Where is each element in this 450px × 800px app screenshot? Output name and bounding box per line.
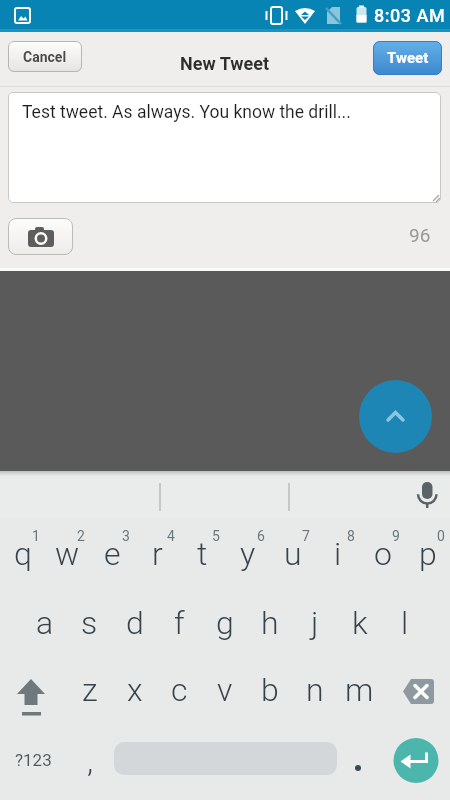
staticText: r bbox=[152, 535, 163, 573]
staticText: v bbox=[217, 671, 233, 709]
staticText: 96 bbox=[409, 224, 431, 246]
staticText: 2 bbox=[77, 528, 85, 544]
staticText: 6 bbox=[257, 528, 265, 544]
staticText: h bbox=[261, 604, 279, 642]
staticText: a bbox=[36, 604, 54, 642]
staticText: 3 bbox=[122, 528, 130, 544]
staticText: 8:03 AM bbox=[374, 5, 446, 26]
staticText: k bbox=[352, 604, 368, 642]
staticText: m bbox=[345, 671, 374, 709]
staticText: y bbox=[240, 535, 256, 573]
staticText: Test tweet. As always. You know the dril… bbox=[22, 102, 351, 123]
staticText: u bbox=[284, 535, 302, 573]
staticText: d bbox=[126, 604, 144, 642]
staticText: p bbox=[419, 535, 437, 573]
staticText: Tweet bbox=[387, 49, 429, 67]
staticText: 7 bbox=[302, 528, 310, 544]
staticText: , bbox=[87, 742, 94, 778]
staticText: New Tweet bbox=[180, 53, 270, 74]
staticText: 8 bbox=[347, 528, 355, 544]
staticText: f bbox=[174, 604, 185, 642]
staticText: 0 bbox=[437, 528, 445, 544]
staticText: l bbox=[401, 604, 409, 642]
staticText: z bbox=[82, 671, 98, 709]
staticText: n bbox=[306, 671, 324, 709]
staticText: x bbox=[127, 671, 143, 709]
staticText: e bbox=[104, 535, 121, 573]
staticText: b bbox=[261, 671, 279, 709]
staticText: o bbox=[374, 535, 392, 573]
staticText: c bbox=[171, 671, 188, 709]
staticText: 5 bbox=[212, 528, 220, 544]
staticText: Cancel bbox=[23, 49, 67, 65]
staticText: ?123 bbox=[15, 750, 52, 770]
staticText: g bbox=[216, 604, 234, 642]
staticText: i bbox=[334, 535, 342, 573]
staticText: q bbox=[14, 535, 32, 573]
staticText: t bbox=[197, 535, 208, 573]
staticText: 9 bbox=[392, 528, 400, 544]
staticText: w bbox=[55, 535, 80, 573]
staticText: 1 bbox=[32, 528, 40, 544]
staticText: s bbox=[81, 604, 98, 642]
staticText: 4 bbox=[167, 528, 175, 544]
staticText: j bbox=[311, 604, 319, 642]
